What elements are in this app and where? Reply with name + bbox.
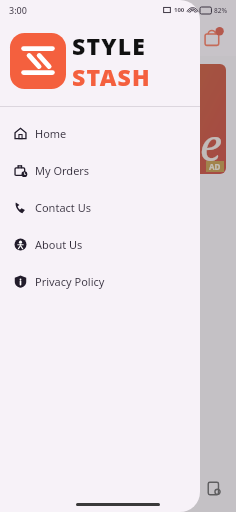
button[interactable]: Cart	[202, 26, 224, 48]
button[interactable]: Contact Us	[0, 189, 200, 226]
staticText: 100	[174, 6, 185, 14]
staticText: Contact Us	[35, 200, 91, 215]
staticText: About Us	[35, 237, 83, 252]
staticText: Privacy Policy	[35, 274, 105, 289]
staticText: AD	[209, 161, 221, 172]
staticText: e	[200, 114, 222, 174]
button[interactable]: My Orders	[0, 152, 200, 189]
staticText: STYLE	[72, 30, 147, 61]
staticText: Home	[35, 126, 67, 141]
staticText: 3:00	[9, 4, 27, 16]
button[interactable]: Home	[0, 115, 200, 152]
staticText: 82%	[214, 6, 227, 15]
button[interactable]: About Us	[0, 226, 200, 263]
staticText: My Orders	[35, 163, 90, 178]
other: Orders tab	[206, 480, 222, 496]
staticText: STASH	[72, 61, 151, 92]
button[interactable]: Privacy Policy	[0, 263, 200, 300]
